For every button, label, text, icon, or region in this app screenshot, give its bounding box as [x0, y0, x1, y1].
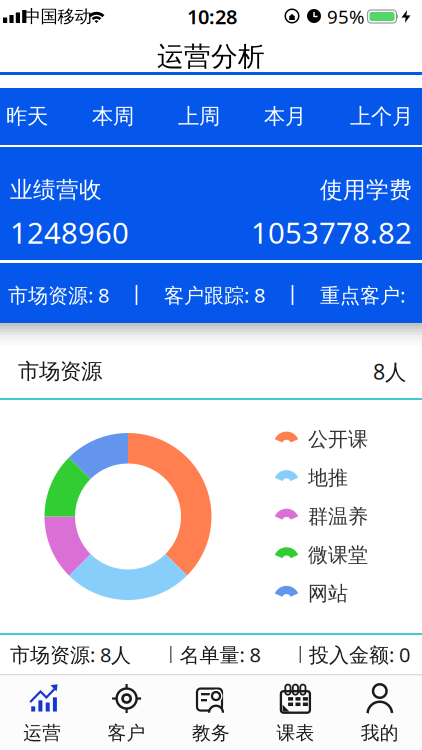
staticText: 网站	[308, 581, 348, 606]
staticText: 本月	[264, 103, 306, 130]
staticText: 我的	[361, 721, 399, 744]
staticText: 运营	[23, 721, 61, 744]
staticText: 名单量: 8	[179, 641, 260, 668]
staticText: 教务	[192, 721, 230, 744]
button[interactable]: 昨天	[0, 87, 54, 146]
staticText: 微课堂	[308, 543, 368, 567]
staticText: 公开课	[308, 427, 368, 452]
button[interactable]: 本周	[86, 87, 140, 146]
button[interactable]: 课表	[253, 675, 338, 750]
staticText: 上周	[178, 103, 220, 130]
button[interactable]: 上个月	[344, 87, 419, 146]
staticText: 市场资源: 8人	[10, 641, 131, 668]
staticText: 上个月	[350, 103, 413, 130]
button[interactable]: 运营	[0, 675, 84, 750]
staticText: 业绩营收	[10, 176, 102, 204]
staticText: 群温养	[308, 504, 368, 529]
staticText: 重点客户:	[320, 282, 410, 308]
staticText: 中国移动	[23, 6, 91, 27]
staticText: 课表	[276, 721, 314, 744]
button[interactable]: 教务	[169, 675, 253, 750]
button[interactable]: 客户	[84, 675, 169, 750]
staticText: 本周	[92, 103, 134, 130]
button[interactable]: 我的	[338, 675, 422, 750]
staticText: 客户跟踪: 8	[164, 282, 265, 308]
staticText: 客户	[108, 721, 146, 744]
staticText: 8人	[373, 357, 406, 386]
staticText: 市场资源	[18, 358, 102, 385]
button[interactable]: 上周	[172, 87, 226, 146]
staticText: 1053778.82	[251, 213, 412, 252]
staticText: 市场资源: 8	[8, 282, 109, 308]
staticText: 10:28	[187, 3, 237, 30]
staticText: 投入金额: 0	[309, 641, 410, 668]
staticText: 运营分析	[157, 40, 265, 73]
staticText: 使用学费	[320, 176, 412, 204]
button[interactable]: 本月	[258, 87, 312, 146]
staticText: 1248960	[10, 213, 129, 252]
staticText: 地推	[308, 466, 348, 490]
staticText: 昨天	[6, 103, 48, 130]
staticText: 95%	[327, 4, 365, 29]
